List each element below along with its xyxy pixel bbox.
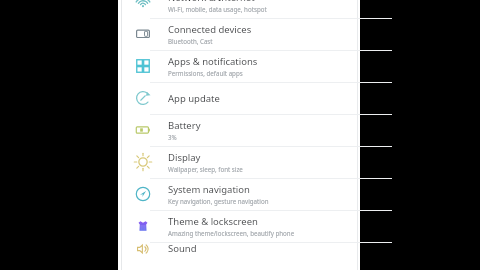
button[interactable]: Sound bbox=[118, 242, 360, 256]
button[interactable]: Display bbox=[118, 146, 360, 178]
button[interactable]: System navigation bbox=[118, 178, 360, 210]
button[interactable]: Theme & lockscreen bbox=[118, 210, 360, 242]
button[interactable]: App update bbox=[118, 82, 360, 114]
button[interactable]: Network & Internet bbox=[118, 0, 360, 18]
staticText: Battery bbox=[168, 119, 201, 132]
staticText: Wallpaper, sleep, font size bbox=[168, 165, 243, 173]
staticText: App update bbox=[168, 92, 220, 105]
staticText: 3% bbox=[168, 133, 177, 141]
staticText: Wi-Fi, mobile, data usage, hotspot bbox=[168, 5, 267, 13]
staticText: Bluetooth, Cast bbox=[168, 37, 213, 45]
staticText: Amazing theme/lockscreen, beautify phone bbox=[168, 229, 295, 237]
staticText: Apps & notifications bbox=[168, 55, 258, 68]
staticText: Permissions, default apps bbox=[168, 69, 243, 77]
staticText: Theme & lockscreen bbox=[168, 215, 258, 228]
staticText: Key navigation, gesture navigation bbox=[168, 197, 269, 205]
staticText: Sound bbox=[168, 242, 197, 255]
staticText: Connected devices bbox=[168, 23, 252, 36]
staticText: System navigation bbox=[168, 183, 250, 196]
staticText: Display bbox=[168, 151, 201, 164]
button[interactable]: Apps & notifications bbox=[118, 50, 360, 82]
button[interactable]: Battery bbox=[118, 114, 360, 146]
staticText: Network & Internet bbox=[168, 0, 255, 4]
button[interactable]: Connected devices bbox=[118, 18, 360, 50]
